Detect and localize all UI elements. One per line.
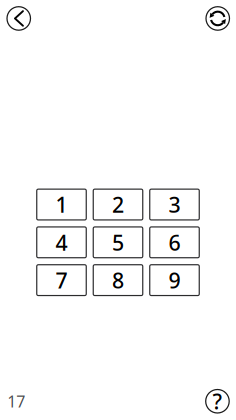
button[interactable]: Back xyxy=(6,6,31,31)
button[interactable]: 6 xyxy=(150,227,199,258)
button[interactable]: 4 xyxy=(37,227,86,258)
staticText: 6 xyxy=(168,228,180,256)
staticText: ? xyxy=(212,387,222,415)
button[interactable]: 9 xyxy=(150,265,199,296)
button[interactable]: 3 xyxy=(150,189,199,220)
staticText: 1 xyxy=(55,190,67,219)
staticText: 7 xyxy=(55,266,67,294)
button[interactable]: 8 xyxy=(93,265,143,296)
staticText: 3 xyxy=(168,190,180,219)
button[interactable]: 1 xyxy=(37,189,86,220)
button[interactable]: 5 xyxy=(93,227,143,258)
staticText: 2 xyxy=(112,190,124,219)
staticText: 4 xyxy=(55,228,67,256)
staticText: 5 xyxy=(112,228,124,256)
staticText: 9 xyxy=(168,266,180,294)
staticText: 8 xyxy=(112,266,124,294)
button[interactable]: 2 xyxy=(93,189,143,220)
button[interactable]: 7 xyxy=(37,265,86,296)
button[interactable]: Restart xyxy=(205,6,230,31)
staticText: 17 xyxy=(7,391,25,412)
button[interactable]: Help xyxy=(205,388,230,414)
